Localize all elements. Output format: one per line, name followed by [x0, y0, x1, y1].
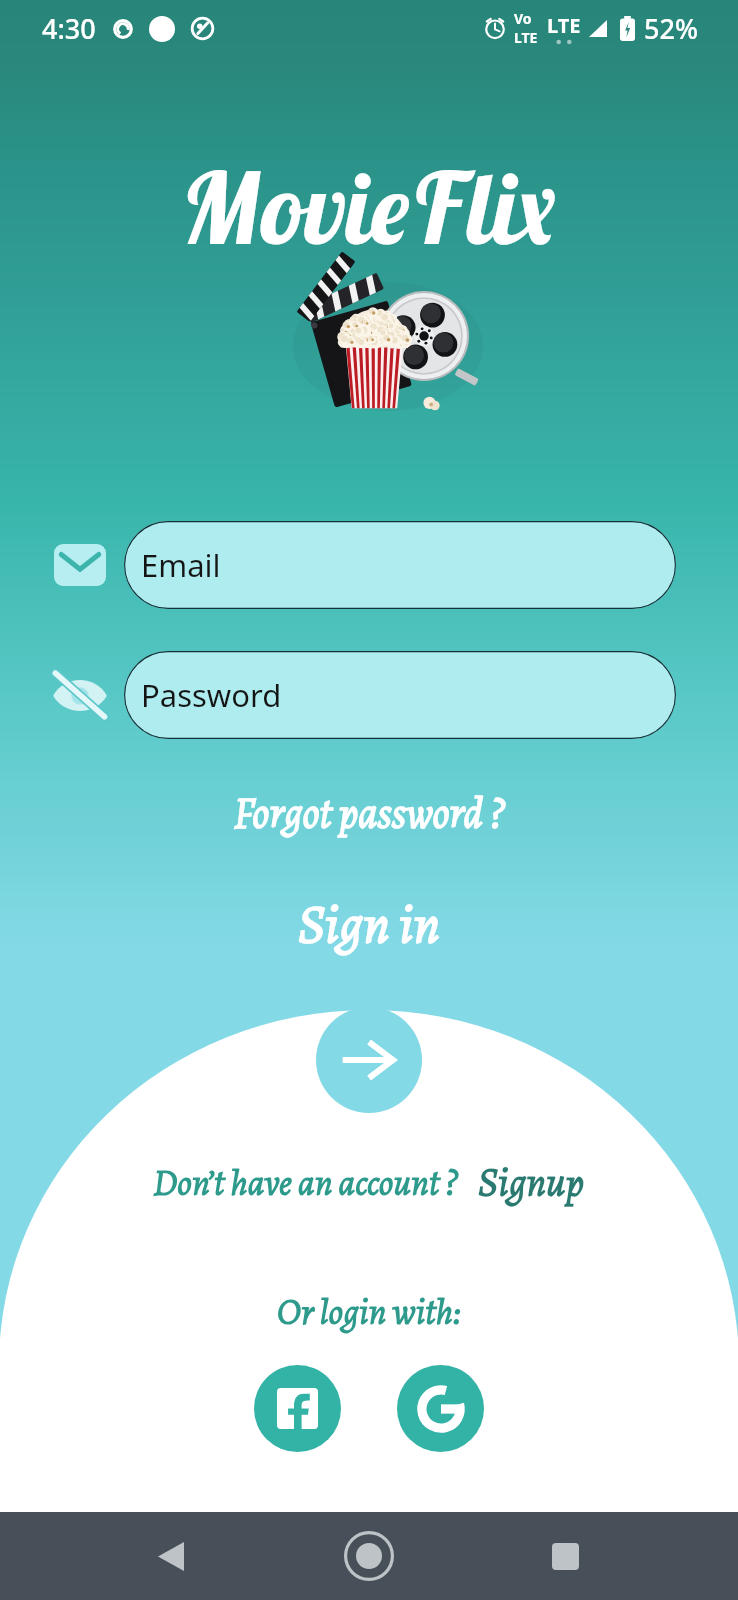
button[interactable]: Home [325, 1512, 413, 1600]
button[interactable]: Sign in [0, 887, 738, 960]
staticText: MovieFlix [0, 145, 738, 269]
button[interactable]: Sign in [316, 1007, 422, 1113]
button[interactable]: Email [124, 521, 676, 609]
staticText: Or login with: [277, 1287, 462, 1336]
staticText: Email [141, 544, 221, 586]
button[interactable]: Recents [521, 1512, 609, 1600]
button[interactable]: Login with Google [397, 1365, 484, 1452]
staticText: 52% [644, 10, 698, 47]
button[interactable]: Forgot password ? [0, 784, 738, 841]
staticText: 4:30 [42, 10, 96, 47]
button[interactable]: Back [127, 1512, 215, 1600]
button[interactable]: Signup [478, 1155, 585, 1209]
staticText: Password [141, 674, 282, 716]
staticText: Vo [514, 9, 532, 28]
button[interactable]: Password [124, 651, 676, 739]
button[interactable]: Login with Facebook [254, 1365, 341, 1452]
staticText: LTE [547, 12, 581, 39]
staticText: Don’t have an account ? [153, 1158, 458, 1207]
staticText: LTE [514, 28, 538, 47]
